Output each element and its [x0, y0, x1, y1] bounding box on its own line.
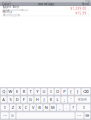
staticText: R	[23, 89, 25, 94]
staticText: Apple Store	[2, 5, 19, 9]
button[interactable]: R	[21, 88, 27, 95]
staticText: I	[50, 89, 51, 94]
button[interactable]: ;	[61, 96, 67, 103]
button[interactable]: ,	[57, 104, 63, 111]
staticText: U	[42, 89, 45, 94]
button[interactable]: ⌨	[84, 112, 90, 119]
button[interactable]: T	[28, 88, 33, 95]
staticText: ⌨	[85, 114, 89, 117]
staticText: ⇧	[82, 105, 85, 110]
button[interactable]: ⌫	[81, 88, 90, 95]
staticText: $15.99	[75, 12, 86, 15]
staticText: P	[63, 89, 65, 94]
button[interactable]: ⇧	[1, 104, 9, 111]
button[interactable]: Netflix	[0, 11, 91, 16]
button[interactable]: '	[68, 96, 74, 103]
staticText: T	[30, 89, 32, 94]
staticText: {	[70, 89, 72, 94]
staticText: Z	[12, 105, 14, 110]
button[interactable]: Y	[34, 88, 40, 95]
button[interactable]: M	[50, 104, 56, 111]
staticText: F	[23, 97, 25, 102]
button[interactable]: }	[75, 88, 81, 95]
staticText: C	[25, 105, 28, 110]
button[interactable]: L	[55, 96, 60, 103]
staticText: $1,299.00	[70, 7, 86, 10]
staticText: 100% ▮	[85, 0, 90, 2]
staticText: .	[66, 105, 67, 110]
staticText: Q	[2, 89, 5, 94]
staticText: .?123	[77, 115, 81, 116]
button[interactable]: W	[7, 88, 13, 95]
staticText: ,	[59, 105, 60, 110]
button[interactable]: I	[48, 88, 54, 95]
staticText: E	[16, 89, 18, 94]
button[interactable]: return	[75, 96, 90, 103]
button[interactable]: Z	[10, 104, 16, 111]
button[interactable]: E	[14, 88, 20, 95]
button[interactable]: H	[34, 96, 40, 103]
button[interactable]: ☺	[10, 112, 15, 119]
button[interactable]: J	[41, 96, 47, 103]
staticText: .?123	[3, 115, 7, 116]
button[interactable]: O	[55, 88, 60, 95]
button[interactable]: A	[1, 96, 7, 103]
staticText: ;	[64, 97, 65, 102]
button[interactable]: N	[43, 104, 49, 111]
staticText: X	[18, 105, 20, 110]
staticText: W	[8, 89, 12, 94]
button[interactable]: U	[41, 88, 47, 95]
button[interactable]: ?	[70, 104, 76, 111]
staticText: H	[36, 97, 39, 102]
staticText: G	[29, 97, 32, 102]
button[interactable]: Cancel	[0, 2, 13, 6]
button[interactable]: ⇧	[77, 104, 90, 111]
button[interactable]: S	[7, 96, 13, 103]
button[interactable]: V	[30, 104, 36, 111]
staticText: B	[38, 105, 41, 110]
button[interactable]: G	[28, 96, 34, 103]
staticText: Cancel	[2, 2, 11, 6]
staticText: }	[77, 89, 79, 94]
staticText: M	[51, 105, 55, 110]
staticText: Order confirmation	[2, 9, 28, 12]
staticText: ⇧	[3, 105, 6, 110]
staticText: '	[70, 97, 71, 102]
staticText: O	[56, 89, 59, 94]
staticText: ⌫	[83, 89, 89, 94]
staticText: D	[16, 97, 19, 102]
staticText: 9:41	[46, 0, 49, 2]
staticText: New Message	[38, 2, 55, 6]
button[interactable]: .?123	[75, 112, 83, 119]
button[interactable]: .	[64, 104, 69, 111]
button[interactable]: P	[61, 88, 67, 95]
button[interactable]: Q	[1, 88, 7, 95]
staticText: V	[32, 105, 34, 110]
staticText: ?	[72, 105, 74, 110]
button[interactable]: B	[37, 104, 43, 111]
button[interactable]: X	[16, 104, 22, 111]
staticText: N	[45, 105, 48, 110]
button[interactable]: C	[23, 104, 29, 111]
button[interactable]: D	[14, 96, 20, 103]
button[interactable]: Apple Store	[0, 6, 91, 11]
staticText: Y	[36, 89, 38, 94]
button[interactable]: .?123	[1, 112, 9, 119]
staticText: Monthly plan	[2, 13, 20, 17]
staticText: Send	[82, 2, 89, 6]
staticText: Netflix	[2, 10, 11, 13]
staticText: ☺	[11, 114, 14, 117]
staticText: L	[56, 97, 58, 102]
staticText: S	[9, 97, 11, 102]
button[interactable]: Send	[80, 2, 91, 6]
staticText: •••• Carrier	[1, 0, 11, 2]
staticText: J	[44, 97, 45, 102]
button[interactable]: space	[16, 112, 75, 119]
button[interactable]: {	[68, 88, 74, 95]
button[interactable]: K	[48, 96, 54, 103]
staticText: K	[50, 97, 52, 102]
button[interactable]: F	[21, 96, 27, 103]
staticText: return	[78, 98, 87, 101]
staticText: A	[2, 97, 5, 102]
